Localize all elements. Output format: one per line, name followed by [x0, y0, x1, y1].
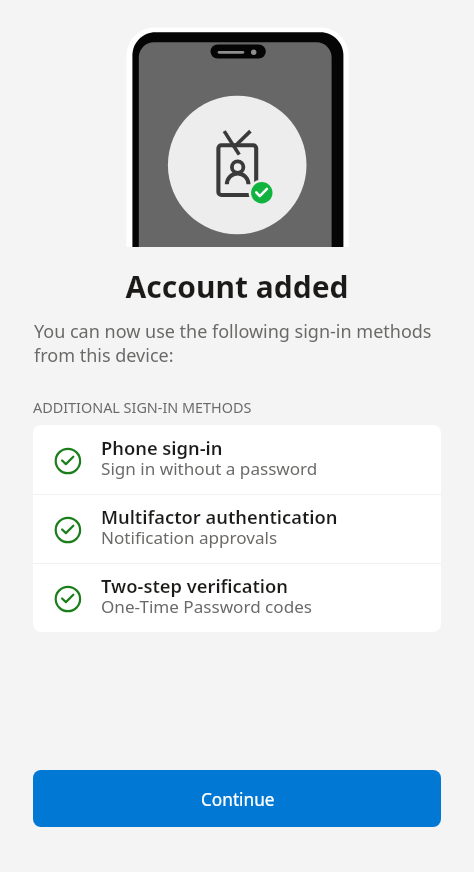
staticText: Multifactor authentication — [101, 509, 338, 529]
staticText: One-Time Password codes — [101, 598, 313, 618]
staticText: Account added — [0, 270, 474, 306]
button[interactable]: Two-step verification — [33, 564, 441, 632]
staticText: Continue — [201, 788, 275, 811]
button[interactable]: Phone sign-in — [33, 425, 441, 494]
staticText: You can now use the following sign-in me… — [34, 319, 444, 367]
button[interactable]: Continue — [33, 770, 441, 827]
staticText: Phone sign-in — [101, 440, 223, 460]
staticText: Sign in without a password — [101, 460, 318, 480]
staticText: ADDITIONAL SIGN-IN METHODS — [33, 399, 252, 417]
staticText: Notification approvals — [101, 529, 278, 549]
staticText: Two-step verification — [101, 578, 288, 598]
button[interactable]: Multifactor authentication — [33, 495, 441, 563]
